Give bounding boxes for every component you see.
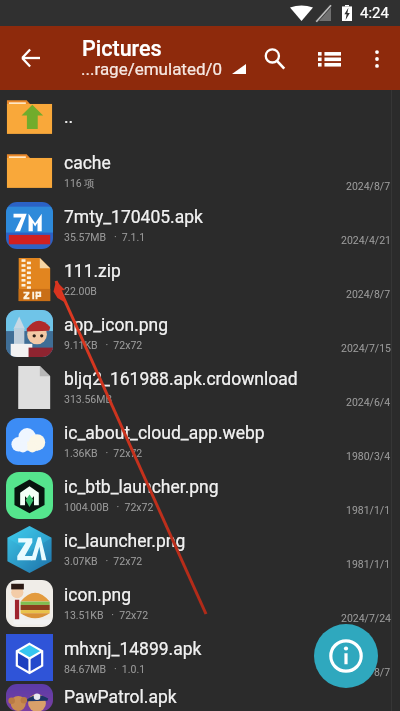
staticText: 2024/8/7 [346,180,391,192]
staticText: .. [64,107,74,128]
staticText: PawPatrol.apk [64,687,177,708]
staticText: 1.36KB · 72x72 [64,447,143,459]
staticText: mhxnj_14899.apk [64,639,202,660]
button[interactable]: More options [357,39,397,79]
staticText: 35.57MB · 7.1.1 [64,231,146,243]
staticText: 313.56MB [64,393,112,405]
staticText: 2024/7/15 [341,342,391,354]
staticText: 3.07KB · 72x72 [64,555,143,567]
staticText: ic_btb_launcher.png [64,477,219,498]
staticText: app_icon.png [64,315,169,336]
staticText: ic_launcher.png [64,531,186,552]
button[interactable]: Search [253,37,297,81]
button[interactable]: Switch view [307,35,351,79]
button[interactable]: bljq2_161988.apk.crdownload [0,360,400,414]
button[interactable]: ic_launcher.png [0,522,400,576]
staticText: 1981/1/1 [346,504,391,516]
staticText: cache [64,153,111,174]
staticText: 111.zip [64,261,121,282]
staticText: 1980/3/4 [346,450,391,462]
staticText: 1004.00B · 72x72 [64,501,154,513]
staticText: ic_about_cloud_app.webp [64,423,265,444]
staticText: 1981/1/1 [346,558,391,570]
staticText: 2024/8/7 [346,288,391,300]
staticText: 22.00B [64,285,97,297]
button[interactable]: cache [0,144,400,198]
button[interactable]: 7mty_170405.apk [0,198,400,252]
button[interactable]: Info [314,624,378,688]
button[interactable]: app_icon.png [0,306,400,360]
button[interactable]: ic_btb_launcher.png [0,468,400,522]
staticText: 84.67MB · 1.0.1 [64,663,146,675]
button[interactable]: .. [0,90,400,144]
button[interactable]: Back [8,36,52,80]
button[interactable]: PawPatrol.apk [0,684,400,711]
button[interactable]: ic_about_cloud_app.webp [0,414,400,468]
staticText: 7mty_170405.apk [64,207,203,228]
button[interactable]: mhxnj_14899.apk [0,630,400,684]
staticText: 4:24 [360,4,389,22]
staticText: 2024/6/4 [346,396,391,408]
staticText: icon.png [64,585,131,606]
staticText: 13.51KB · 72x72 [64,609,149,621]
button[interactable]: 111.zip [0,252,400,306]
staticText: 116 项 [64,177,95,190]
staticText: 2024/8/7 [346,666,391,678]
button[interactable]: icon.png [0,576,400,630]
staticText: ...rage/emulated/0 [81,59,223,79]
staticText: 2024/7/24 [341,612,391,624]
staticText: bljq2_161988.apk.crdownload [64,369,298,390]
staticText: 2024/4/21 [341,234,391,246]
staticText: 9.11KB · 72x72 [64,339,143,351]
staticText: Pictures [82,36,162,61]
